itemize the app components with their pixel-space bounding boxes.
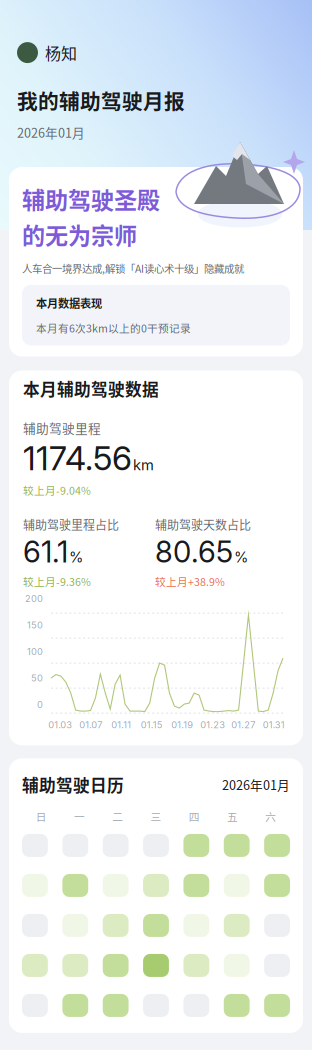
staticText: 100 [27,646,43,657]
staticText: 人车合一境界达成,解锁「AI读心术十级」隐藏成就 [22,261,244,276]
staticText: 二 [112,808,123,824]
staticText: 较上月-9.04% [23,482,91,498]
staticText: 辅助驾驶日历 [22,772,124,796]
staticText: 一 [74,808,85,824]
staticText: % [69,548,83,566]
staticText: 2026年01月 [222,775,290,794]
staticText: % [234,548,248,566]
staticText: 80.65 [155,534,233,570]
staticText: 辅助驾驶里程占比 [23,516,119,533]
staticText: 50 [31,672,43,684]
staticText: 辅助驾驶天数占比 [155,516,251,533]
staticText: 我的辅助驾驶月报 [17,85,185,115]
staticText: 较上月+38.9% [155,574,225,589]
staticText: 01.27 [231,719,255,730]
staticText: 四 [189,808,200,824]
staticText: 01.03 [48,719,72,730]
staticText: 本月辅助驾驶数据 [23,376,159,401]
staticText: 01.23 [200,719,225,730]
staticText: 本月数据表现 [36,295,102,311]
staticText: 61.1 [23,534,68,570]
staticText: 的无为宗师 [22,217,137,251]
staticText: 较上月-9.36% [23,574,91,589]
staticText: 200 [25,593,43,604]
staticText: 辅助驾驶圣殿 [22,182,160,215]
staticText: 01.31 [263,719,285,730]
staticText: 01.07 [79,719,102,730]
staticText: 杨知 [45,41,77,64]
staticText: km [133,456,154,474]
staticText: 本月有6次3km以上的0干预记录 [36,320,191,335]
staticText: 三 [150,808,161,824]
staticText: 六 [265,808,276,824]
staticText: 0 [37,699,43,710]
staticText: 日 [36,808,47,824]
staticText: 1174.56 [23,438,132,478]
staticText: 五 [227,808,238,824]
staticText: 01.11 [111,719,131,730]
staticText: 150 [27,619,43,631]
staticText: 2026年01月 [17,123,85,141]
staticText: 01.15 [141,719,163,730]
staticText: 辅助驾驶里程 [23,419,101,437]
button[interactable]: 杨知 [0,38,87,67]
staticText: 01.19 [171,719,193,730]
